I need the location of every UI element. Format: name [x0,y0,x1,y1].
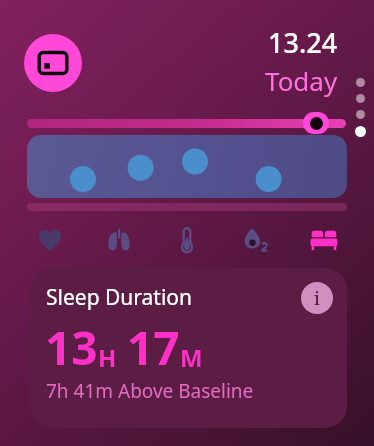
button[interactable]: Time scrubber [0,112,374,134]
button[interactable]: Heart rate [30,220,70,260]
button[interactable]: Info [301,282,333,314]
staticText: Sleep Duration [46,283,193,312]
staticText: 7h 41m Above Baseline [46,378,254,404]
button[interactable]: Skin temperature [167,220,207,260]
staticText: 13 [45,316,98,379]
staticText: M [180,341,203,374]
button[interactable]: Blood oxygen [236,220,276,260]
button[interactable]: Sleep [304,220,344,260]
staticText: H [98,341,117,374]
button[interactable]: Sleep app [24,34,82,92]
staticText: Today [265,63,338,98]
button[interactable]: Sleep stages chart [27,135,347,198]
button[interactable]: Respiratory rate [99,220,139,260]
staticText: 13.24 [268,24,338,61]
button[interactable]: Sleep Duration [30,268,347,428]
staticText: i [314,286,320,311]
staticText: 17 [127,316,180,379]
